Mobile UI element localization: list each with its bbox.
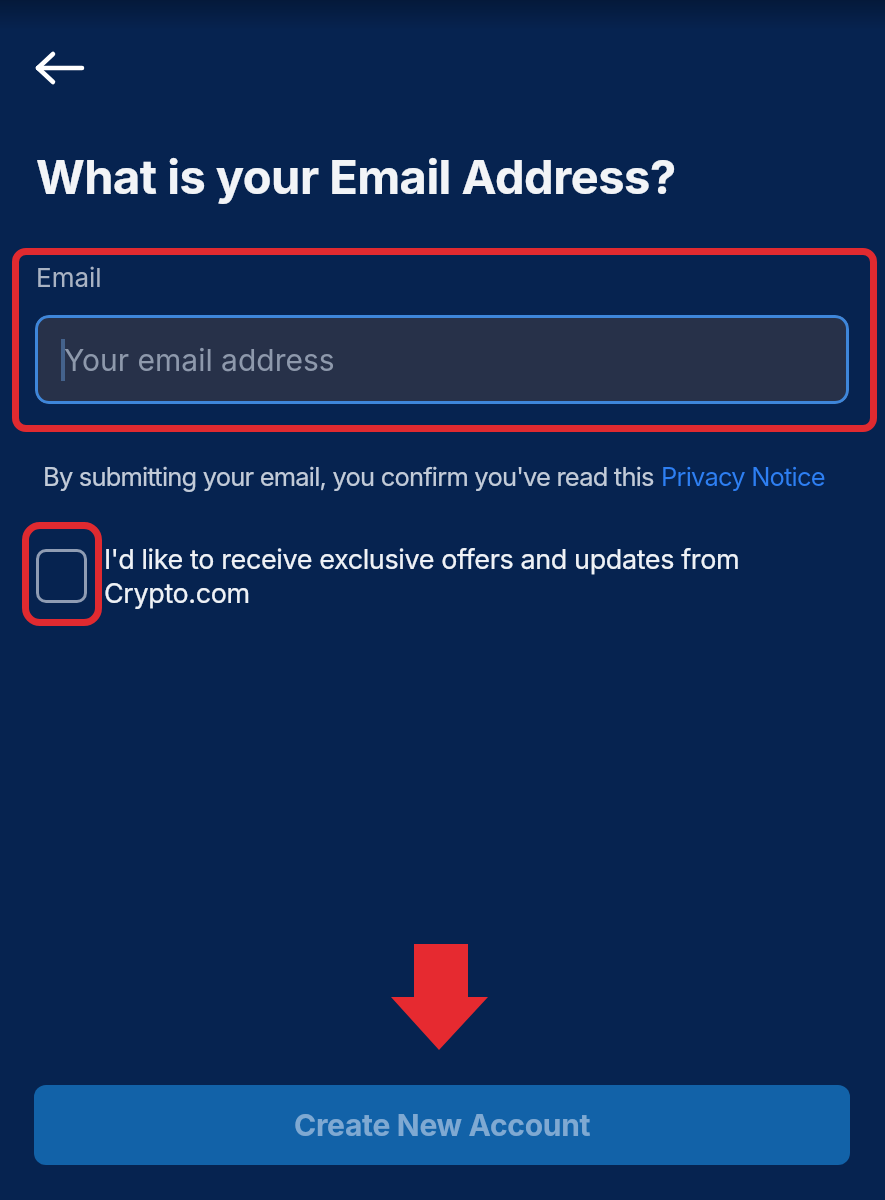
staticText: Email [36,262,102,293]
button[interactable]: Create New Account [34,1085,850,1165]
button[interactable]: Privacy Notice [661,461,825,492]
button[interactable] [36,549,87,603]
staticText: Create New Account [294,1107,591,1143]
button[interactable] [36,50,84,86]
staticText: By submitting your email, you confirm yo… [43,461,661,492]
staticText: I'd like to receive exclusive offers and… [104,543,740,610]
staticText: Your email address [64,342,335,378]
button[interactable]: Your email address [35,315,849,404]
staticText: What is your Email Address? [36,148,676,205]
